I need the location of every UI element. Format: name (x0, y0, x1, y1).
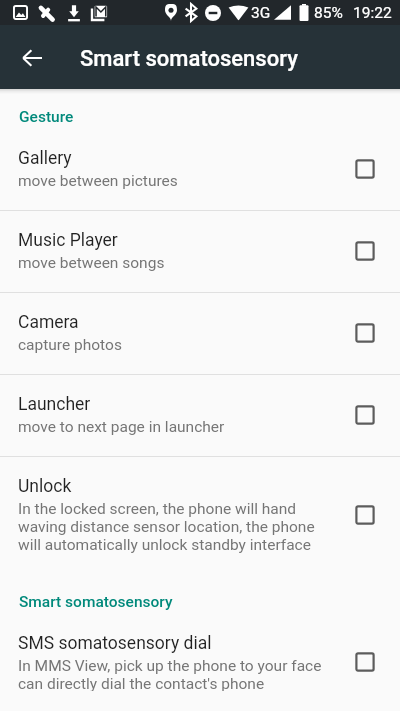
button[interactable]: Toggle Music Player (344, 230, 386, 272)
staticText: Unlock (18, 476, 72, 497)
button[interactable]: Toggle Unlock (344, 494, 386, 536)
button[interactable]: Launcher (0, 375, 400, 456)
button[interactable]: Toggle SMS somatosensory dial (344, 641, 386, 683)
staticText: move to next page in launcher (18, 418, 225, 436)
staticText: 19:22 (353, 4, 392, 22)
button[interactable]: Back (10, 36, 54, 80)
staticText: Smart somatosensory (80, 46, 298, 72)
staticText: Gesture (19, 108, 74, 126)
button[interactable]: Toggle Launcher (344, 394, 386, 436)
staticText: Gallery (18, 148, 72, 169)
staticText: SMS somatosensory dial (18, 633, 212, 654)
button[interactable]: SMS somatosensory dial (0, 614, 400, 711)
staticText: In the locked screen, the phone will han… (18, 500, 338, 554)
staticText: move between songs (18, 254, 165, 272)
button[interactable]: Toggle Camera (344, 312, 386, 354)
staticText: Launcher (18, 394, 91, 415)
button[interactable]: Camera (0, 293, 400, 374)
staticText: Camera (18, 312, 79, 333)
staticText: Smart somatosensory (19, 593, 173, 611)
staticText: move between pictures (18, 172, 178, 190)
button[interactable]: Gallery (0, 129, 400, 210)
staticText: 3G (251, 4, 271, 22)
staticText: 85% (314, 4, 343, 22)
button[interactable]: Music Player (0, 211, 400, 292)
staticText: Music Player (18, 230, 118, 251)
staticText: capture photos (18, 336, 122, 354)
button[interactable]: Toggle Gallery (344, 148, 386, 190)
staticText: In MMS View, pick up the phone to your f… (18, 657, 338, 691)
button[interactable]: Unlock (0, 457, 400, 574)
